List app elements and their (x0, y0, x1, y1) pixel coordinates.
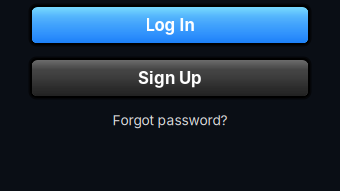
button[interactable]: Forgot password? (109, 109, 230, 132)
staticText: Forgot password? (112, 112, 227, 129)
staticText: Log In (145, 15, 194, 35)
button[interactable]: Sign Up (28, 56, 312, 100)
button[interactable]: Log In (28, 3, 312, 47)
staticText: Sign Up (138, 68, 202, 88)
